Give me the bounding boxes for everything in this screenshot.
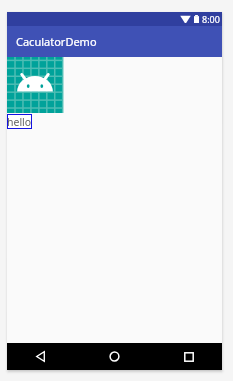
staticText: hello [7, 115, 32, 129]
button[interactable]: Home [100, 343, 129, 370]
staticText: CaculatorDemo [16, 34, 97, 49]
button[interactable]: Back [26, 343, 55, 370]
staticText: 8:00 [202, 13, 220, 25]
button[interactable]: Recent apps [174, 343, 203, 370]
